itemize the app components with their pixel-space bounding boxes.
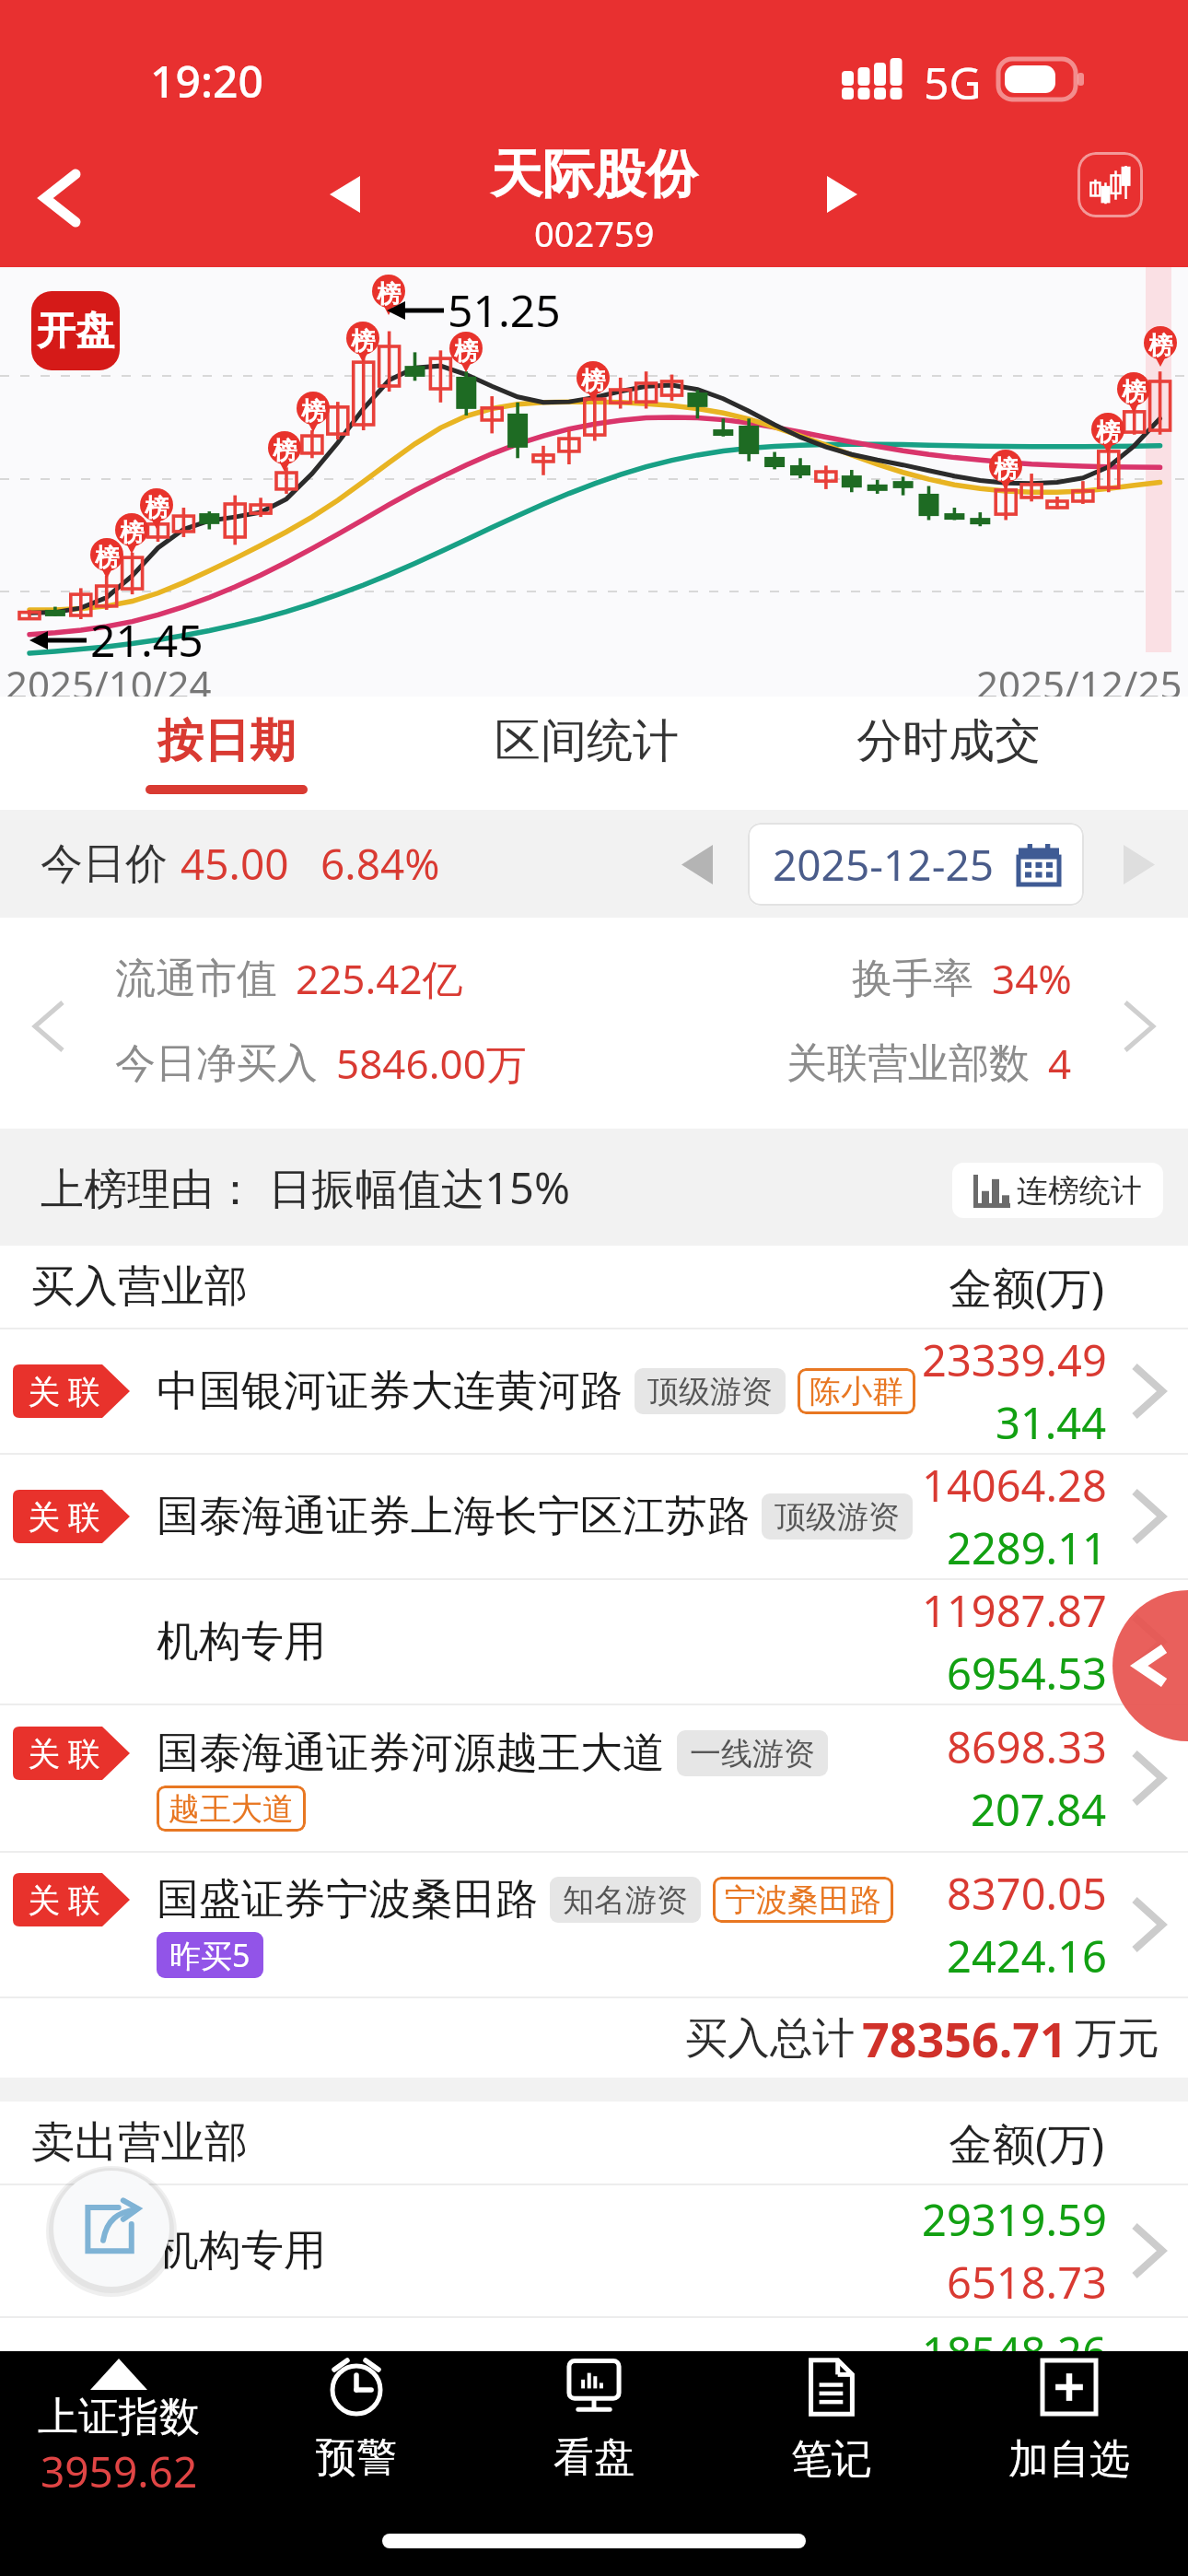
staticText: 关 联 <box>28 1731 101 1775</box>
button[interactable]: 预警 <box>238 2351 475 2513</box>
button[interactable]: 机构专用 <box>0 2185 1188 2316</box>
button[interactable]: 机构专用 <box>0 1580 1188 1704</box>
button[interactable]: 开盘 <box>31 291 120 370</box>
button[interactable]: 关 联 <box>0 1853 1188 1996</box>
staticText: 榜 <box>301 396 325 427</box>
staticText: 国泰海通证券河源越王大道 <box>157 1727 665 1780</box>
staticText: 19:20 <box>150 51 263 111</box>
button[interactable]: 机构专用 <box>0 2318 1188 2449</box>
staticText: 机构专用 <box>157 2357 326 2410</box>
staticText: 2025-12-25 <box>773 836 995 894</box>
staticText: 知名游资 <box>563 1880 688 1920</box>
staticText: 榜 <box>95 543 119 573</box>
staticText: 2025/10/24 <box>6 658 212 697</box>
staticText: 开盘 <box>37 307 114 356</box>
staticText: 关 联 <box>28 1369 101 1413</box>
staticText: 顶级游资 <box>647 1372 773 1411</box>
staticText: 金额(万) <box>949 1258 1105 1317</box>
button[interactable]: Next day <box>1107 824 1171 905</box>
staticText: 预警 <box>316 2432 397 2483</box>
staticText: 榜 <box>145 493 169 523</box>
button[interactable]: Candlestick chart <box>1077 152 1143 217</box>
button[interactable]: 笔记 <box>713 2351 950 2513</box>
staticText: 2025/12/25 <box>976 658 1182 697</box>
staticText: 关联营业部数 <box>786 1038 1030 1089</box>
staticText: 6.84% <box>320 835 440 893</box>
button[interactable]: Previous page <box>1112 1590 1188 1741</box>
staticText: 国盛证券宁波桑田路 <box>157 1873 538 1926</box>
staticText: 14064.28 <box>922 1456 1107 1515</box>
staticText: 31.44 <box>996 1393 1107 1452</box>
staticText: 榜 <box>1122 377 1146 407</box>
staticText: 18548.26 <box>922 2323 1107 2382</box>
staticText: 越王大道 <box>169 1789 294 1829</box>
staticText: 78356.71 <box>862 2006 1067 2071</box>
staticText: 榜 <box>351 326 375 357</box>
staticText: 区间统计 <box>495 712 679 770</box>
staticText: 0.00 <box>1020 2385 1107 2444</box>
staticText: 榜 <box>120 518 144 548</box>
staticText: 2289.11 <box>947 1518 1107 1577</box>
staticText: 榜 <box>1148 331 1172 361</box>
staticText: 国泰海通证券上海长宁区江苏路 <box>157 1490 750 1543</box>
staticText: 002759 <box>534 209 655 257</box>
button[interactable]: 按日期 <box>93 697 360 810</box>
staticText: 8698.33 <box>947 1717 1107 1776</box>
button[interactable]: 连榜统计 <box>973 1163 1163 1218</box>
staticText: 29319.59 <box>922 2190 1107 2249</box>
staticText: 关 联 <box>28 1494 101 1539</box>
button[interactable]: Next stock <box>800 153 883 236</box>
staticText: 8370.05 <box>947 1864 1107 1923</box>
staticText: 流通市值 <box>115 954 277 1004</box>
button[interactable]: Back <box>9 143 111 253</box>
staticText: 榜 <box>454 336 478 367</box>
staticText: 榜 <box>273 436 297 466</box>
staticText: 一线游资 <box>690 1734 815 1774</box>
button[interactable]: 关 联 <box>0 1705 1188 1851</box>
staticText: 连榜统计 <box>1017 1171 1142 1211</box>
staticText: 3959.62 <box>41 2442 198 2500</box>
staticText: 天际股份 <box>491 142 697 207</box>
staticText: 买入总计 <box>685 2012 855 2066</box>
staticText: 5G <box>924 53 982 112</box>
staticText: 4 <box>1048 1036 1072 1091</box>
staticText: 顶级游资 <box>775 1497 900 1537</box>
button[interactable]: 看盘 <box>475 2351 713 2513</box>
staticText: 11987.87 <box>922 1581 1107 1640</box>
staticText: 宁波桑田路 <box>725 1880 881 1920</box>
staticText: 45.00 <box>181 835 289 893</box>
staticText: 6954.53 <box>947 1644 1107 1703</box>
staticText: 机构专用 <box>157 1615 326 1669</box>
staticText: 陈小群 <box>809 1372 903 1411</box>
staticText: 榜 <box>994 454 1018 485</box>
button[interactable]: Share <box>53 2171 169 2287</box>
button[interactable]: Previous day <box>665 824 729 905</box>
button[interactable]: 2025-12-25 <box>773 823 1063 906</box>
staticText: 今日价 <box>41 837 168 891</box>
button[interactable]: 上证指数 <box>0 2351 238 2513</box>
staticText: 关 联 <box>28 1878 101 1922</box>
staticText: 今日净买入 <box>115 1038 318 1089</box>
staticText: 21.45 <box>90 610 204 670</box>
button[interactable]: 关 联 <box>0 1455 1188 1578</box>
staticText: 看盘 <box>553 2432 635 2483</box>
staticText: 5846.00万 <box>336 1036 527 1091</box>
staticText: 上证指数 <box>38 2392 200 2442</box>
staticText: 换手率 <box>852 954 973 1004</box>
staticText: 按日期 <box>157 712 296 770</box>
staticText: 卖出营业部 <box>31 2115 248 2170</box>
staticText: 225.42亿 <box>296 951 463 1006</box>
button[interactable]: 关 联 <box>0 1329 1188 1453</box>
staticText: 中国银河证券大连黄河路 <box>157 1364 623 1418</box>
button[interactable]: 分时成交 <box>815 697 1082 810</box>
button[interactable]: 区间统计 <box>453 697 720 810</box>
staticText: 榜 <box>377 279 401 310</box>
staticText: 6518.73 <box>947 2253 1107 2312</box>
button[interactable]: Previous stock <box>303 153 386 236</box>
staticText: 机构专用 <box>157 2224 326 2277</box>
staticText: 上榜理由： 日振幅值达15% <box>41 1158 571 1217</box>
staticText: 榜 <box>581 366 605 396</box>
staticText: 笔记 <box>791 2434 872 2485</box>
staticText: 分时成交 <box>856 712 1041 770</box>
button[interactable]: 加自选 <box>950 2351 1188 2513</box>
